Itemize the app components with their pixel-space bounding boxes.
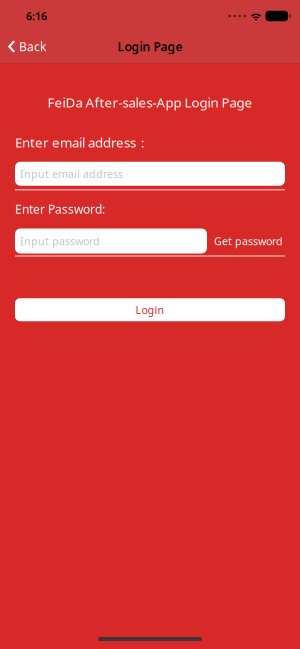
staticText: 6:16 xyxy=(26,9,47,23)
staticText: Login Page xyxy=(117,38,182,54)
staticText: Get password xyxy=(214,234,283,248)
staticText: Enter email address： xyxy=(15,133,149,151)
staticText: FeiDa After-sales-App Login Page xyxy=(47,93,252,111)
button[interactable]: Get password xyxy=(214,234,283,248)
button[interactable]: Back xyxy=(0,32,46,60)
button[interactable]: Input email address xyxy=(15,162,285,186)
button[interactable]: Input password xyxy=(15,228,207,253)
staticText: Login xyxy=(135,303,164,317)
staticText: Enter Password: xyxy=(15,201,105,217)
staticText: Input password xyxy=(20,234,100,248)
button[interactable]: Login xyxy=(15,298,285,321)
staticText: Input email address xyxy=(20,167,123,181)
staticText: Back xyxy=(19,38,46,54)
